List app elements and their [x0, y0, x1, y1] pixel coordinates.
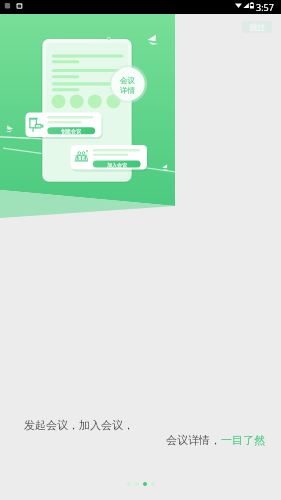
staticText: 会议详情， — [166, 433, 221, 447]
staticText: 会议 详情 — [120, 76, 135, 95]
staticText: 一目了然 — [221, 433, 265, 447]
staticText: 跳过 — [250, 23, 265, 32]
staticText: 加入会议 — [107, 162, 127, 168]
staticText: 3:57 — [256, 1, 274, 13]
staticText: 发起会议，加入会议， — [24, 418, 134, 432]
button[interactable]: 跳过 — [242, 21, 272, 33]
staticText: 创建会议 — [61, 128, 81, 134]
